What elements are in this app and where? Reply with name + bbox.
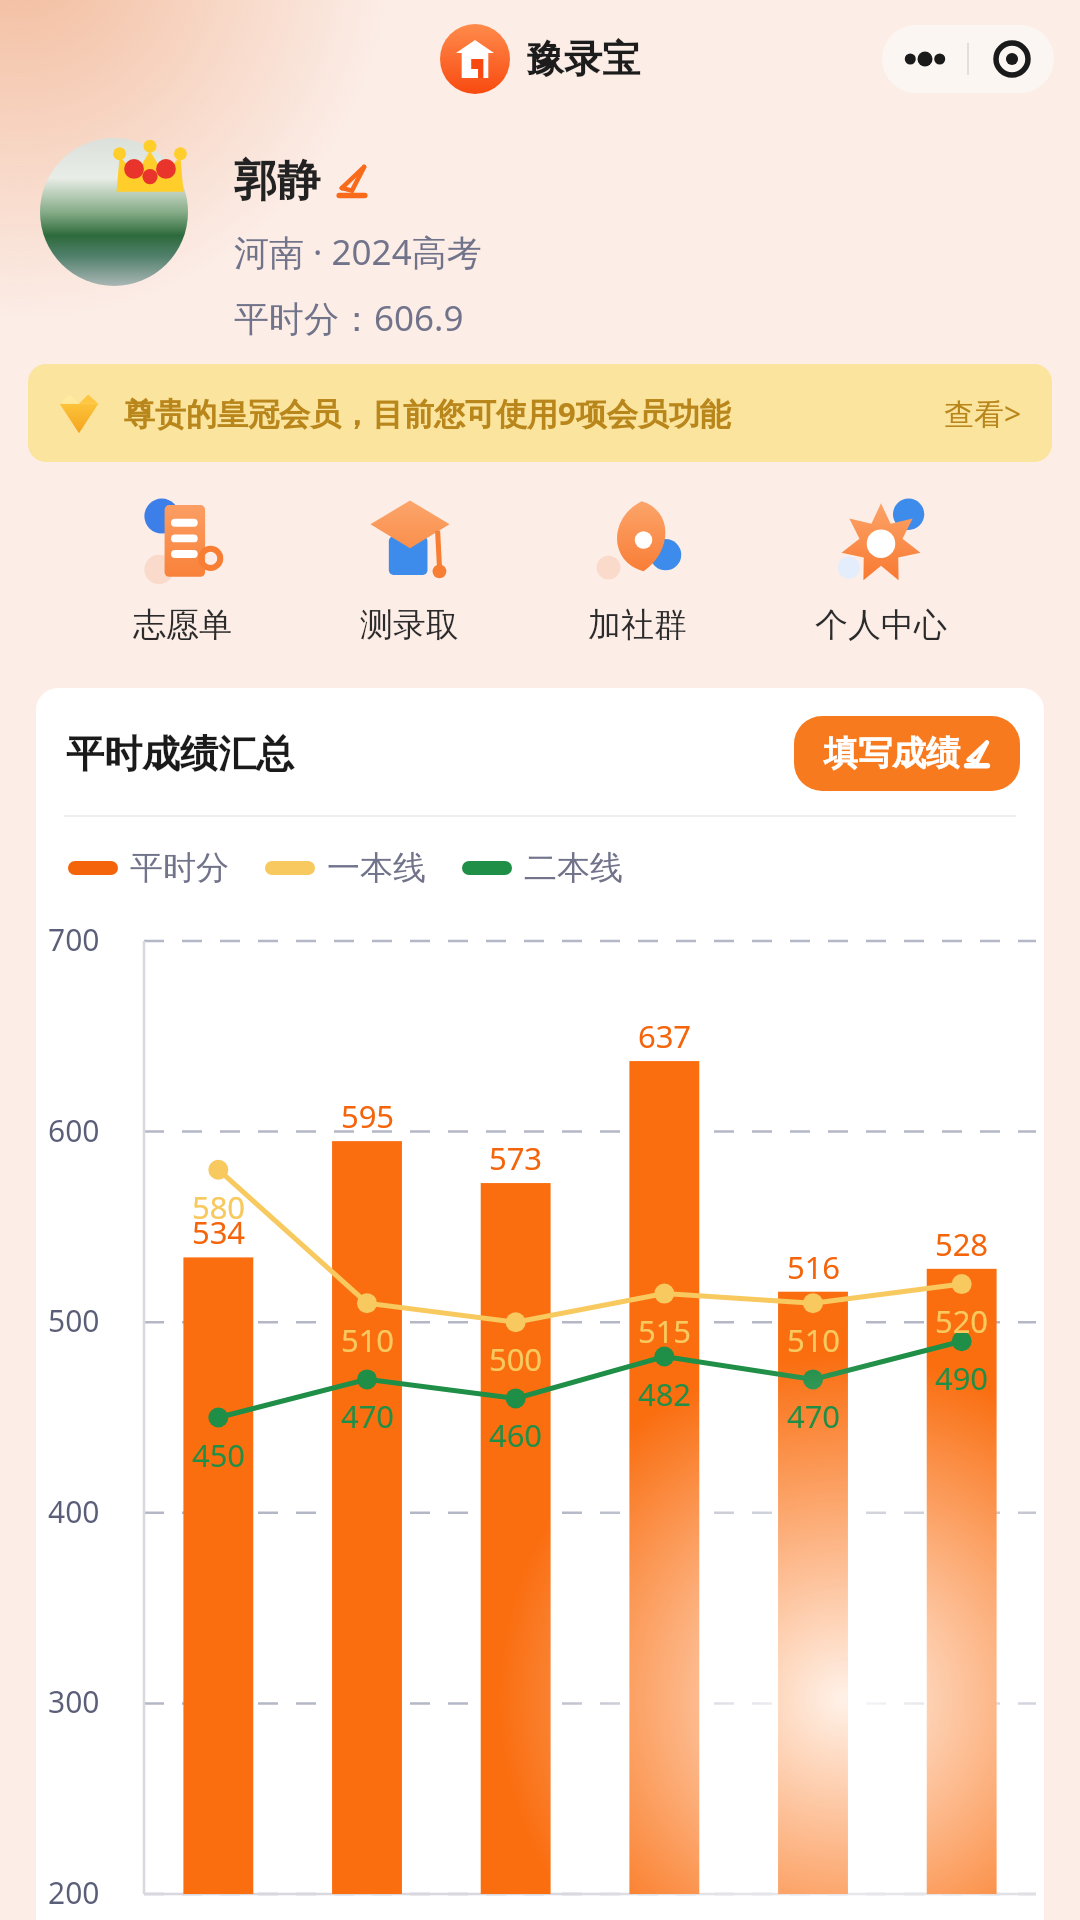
- button[interactable]: Close: [969, 25, 1054, 93]
- staticText: 500: [48, 1300, 100, 1341]
- staticText: 482: [590, 1373, 739, 1415]
- button[interactable]: 二本线: [462, 847, 623, 889]
- button[interactable]: 尊贵的皇冠会员，目前您可使用9项会员功能: [28, 364, 1052, 462]
- button[interactable]: 一本线: [265, 847, 426, 889]
- staticText: 500: [441, 1338, 590, 1380]
- button[interactable]: 郭静: [234, 154, 368, 208]
- staticText: 平时分：606.9: [234, 294, 464, 342]
- staticText: 470: [293, 1395, 442, 1437]
- staticText: 平时分: [130, 847, 229, 889]
- staticText: 515: [590, 1310, 739, 1352]
- staticText: 二本线: [524, 847, 623, 889]
- staticText: 200: [48, 1872, 100, 1913]
- staticText: 志愿单: [133, 604, 232, 646]
- button[interactable]: More options: [882, 25, 967, 93]
- staticText: 600: [48, 1110, 100, 1151]
- button[interactable]: 平时分: [68, 847, 229, 889]
- staticText: 460: [441, 1414, 590, 1456]
- staticText: 测录取: [360, 604, 459, 646]
- button[interactable]: 志愿单: [113, 488, 252, 652]
- button[interactable]: 加社群: [568, 488, 707, 652]
- staticText: 400: [48, 1491, 100, 1532]
- staticText: 580: [144, 1186, 293, 1228]
- staticText: 528: [887, 1223, 1036, 1265]
- staticText: 填写成绩: [824, 732, 960, 775]
- staticText: 700: [48, 919, 100, 960]
- staticText: 河南 · 2024高考: [234, 228, 482, 276]
- staticText: 520: [887, 1300, 1036, 1342]
- button[interactable]: App logo: [440, 24, 510, 94]
- staticText: 查看>: [944, 393, 1022, 434]
- staticText: 595: [293, 1095, 442, 1137]
- button[interactable]: 测录取: [340, 488, 479, 652]
- staticText: 个人中心: [815, 604, 947, 646]
- staticText: 郭静: [234, 154, 320, 208]
- staticText: 516: [739, 1246, 888, 1288]
- staticText: 一本线: [327, 847, 426, 889]
- staticText: 470: [739, 1395, 888, 1437]
- staticText: 豫录宝: [526, 35, 640, 83]
- button[interactable]: 填写成绩: [794, 716, 1020, 791]
- staticText: 510: [739, 1319, 888, 1361]
- staticText: 637: [590, 1015, 739, 1057]
- staticText: 534: [144, 1211, 293, 1253]
- staticText: 尊贵的皇冠会员，目前您可使用9项会员功能: [124, 392, 731, 434]
- staticText: 450: [144, 1434, 293, 1476]
- staticText: 573: [441, 1137, 590, 1179]
- staticText: 300: [48, 1681, 100, 1722]
- button[interactable]: 个人中心: [795, 488, 967, 652]
- staticText: 加社群: [588, 604, 687, 646]
- staticText: 平时成绩汇总: [66, 730, 294, 778]
- staticText: 490: [887, 1357, 1036, 1399]
- staticText: 510: [293, 1319, 442, 1361]
